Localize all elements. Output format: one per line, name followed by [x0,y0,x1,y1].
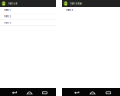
button[interactable]: Home [22,90,37,96]
button[interactable]: Recent apps [100,90,116,96]
staticText: Item 1 [4,8,11,12]
button[interactable]: Back [7,90,22,96]
button[interactable]: Item detail [62,0,83,7]
button[interactable]: Recent apps [37,90,52,96]
button[interactable]: Home [85,90,100,96]
button[interactable]: Item 1 [0,7,56,13]
button[interactable]: Back [69,90,85,96]
staticText: Item 3 [66,8,74,12]
button[interactable]: Item List [0,0,18,7]
button[interactable]: Item 3 [0,20,56,26]
staticText: Item detail [70,2,83,5]
staticText: Item List [8,2,18,5]
staticText: Item 3 [4,21,12,24]
button[interactable]: Item 2 [0,13,56,19]
staticText: Item 2 [4,15,12,18]
